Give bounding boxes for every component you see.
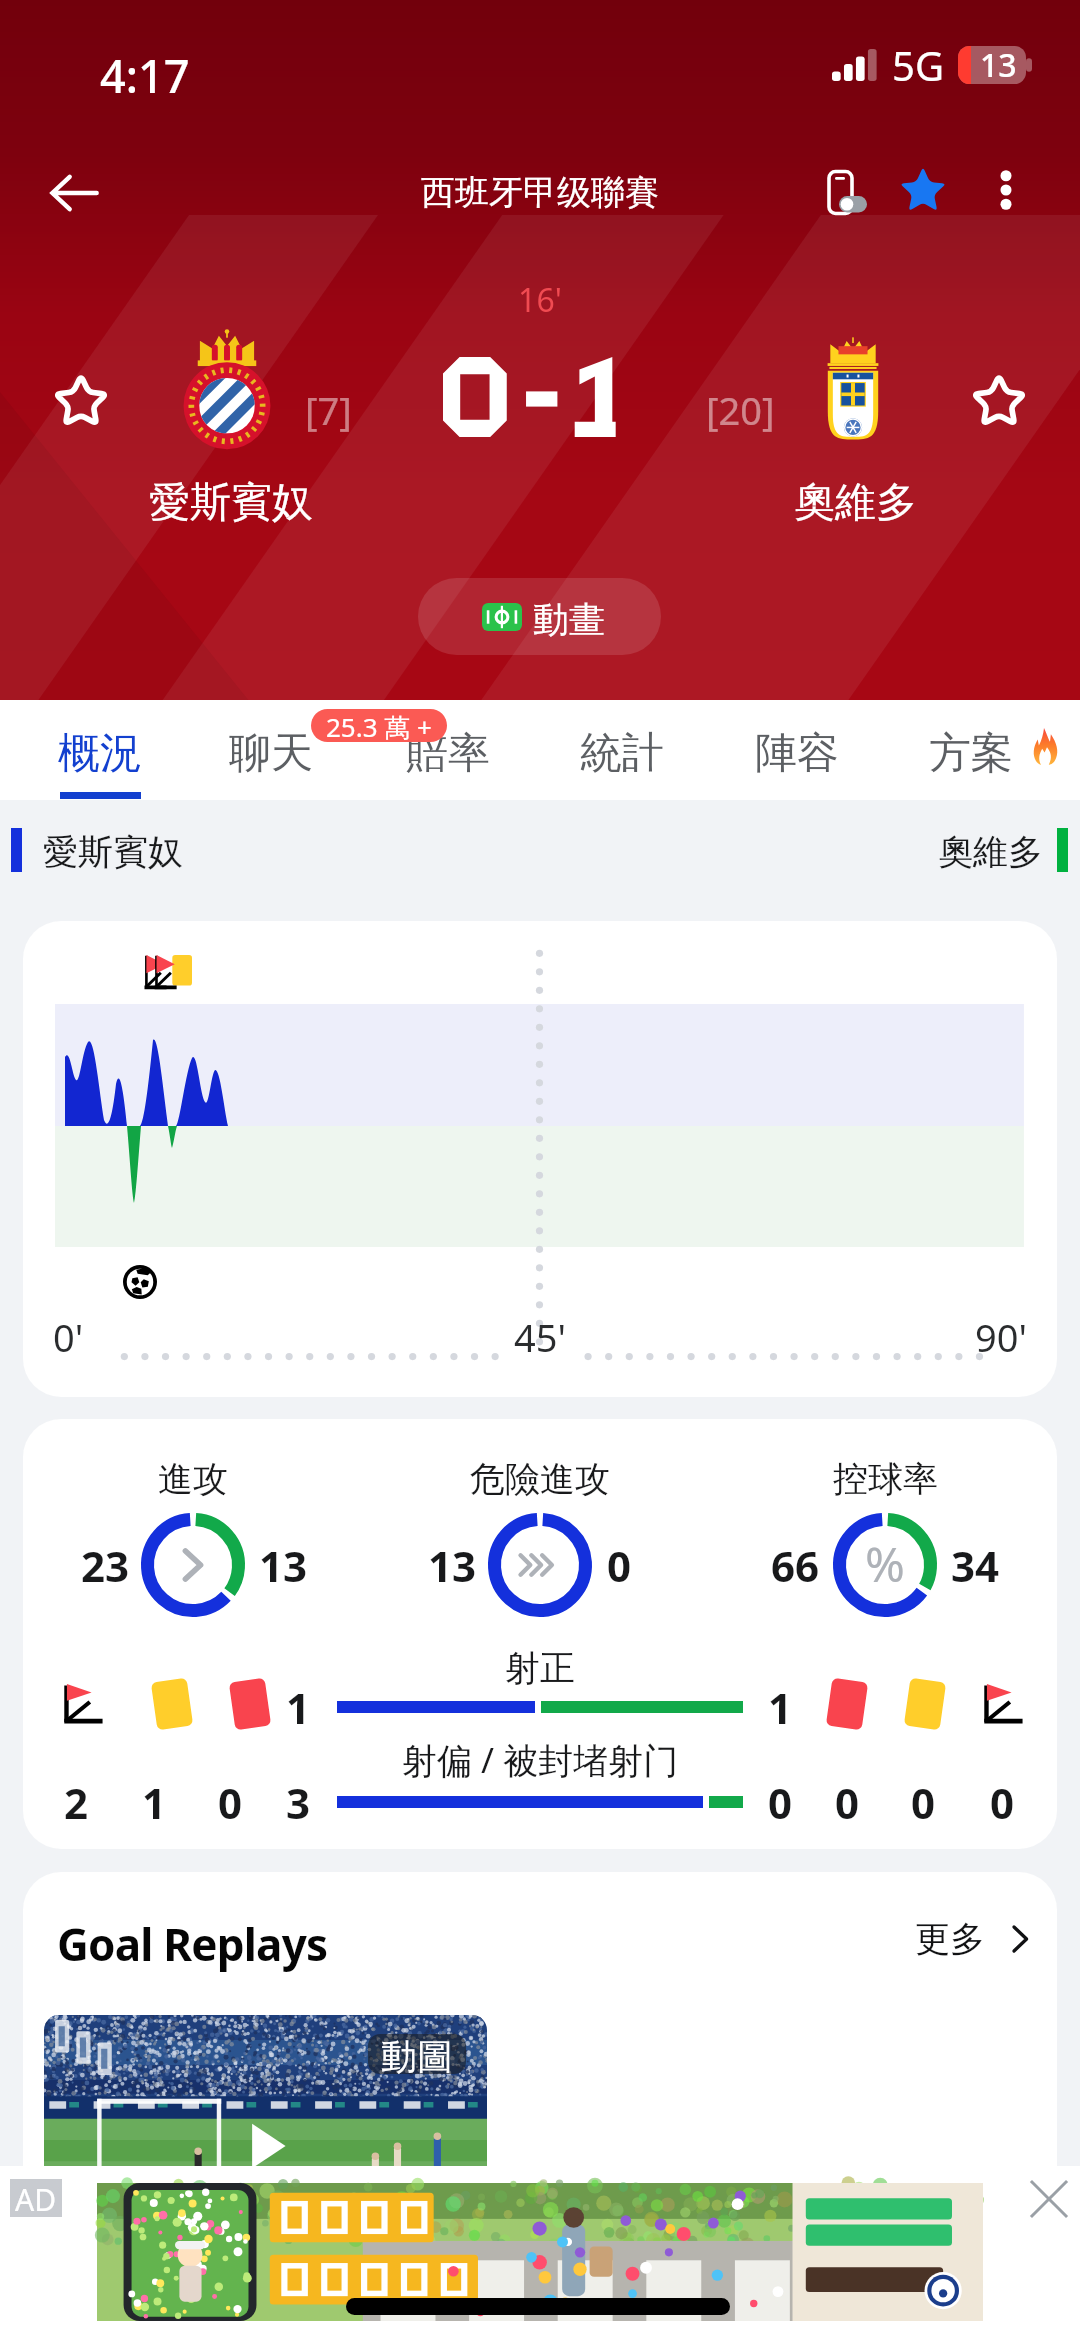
staticText: 概況 <box>58 727 142 780</box>
staticText: 聊天 <box>229 727 313 780</box>
button[interactable]: 方案 <box>884 700 1058 800</box>
button[interactable]: Favourite away team <box>964 366 1034 436</box>
staticText: 13 <box>980 43 1017 87</box>
staticText: 66 <box>771 1537 820 1594</box>
staticText: 愛斯賓奴 <box>43 830 183 874</box>
staticText: 射偏 / 被封堵射门 <box>402 1736 679 1784</box>
staticText: 0 <box>218 1774 243 1831</box>
staticText: 0 <box>911 1774 936 1831</box>
button[interactable]: Favourite home team <box>46 366 116 436</box>
staticText: 方案 <box>929 727 1013 780</box>
button[interactable]: Favourite <box>878 145 968 235</box>
button[interactable]: 統計 <box>535 700 709 800</box>
staticText: 0 <box>835 1774 860 1831</box>
staticText: 控球率 <box>833 1457 938 1501</box>
button[interactable]: More options <box>961 145 1051 235</box>
staticText: 34 <box>951 1537 1000 1594</box>
staticText: 4:17 <box>100 45 190 106</box>
button[interactable]: 聊天 <box>184 700 358 800</box>
staticText: % <box>865 1531 905 1596</box>
staticText: 西班牙甲级聯賽 <box>421 171 659 214</box>
staticText: 1 <box>142 1774 167 1831</box>
staticText: 奧維多 <box>794 477 917 529</box>
staticText: 0' <box>53 1311 84 1363</box>
staticText: 動圖 <box>381 2034 453 2074</box>
staticText: 16' <box>0 278 1080 322</box>
staticText: Goal Replays <box>57 1914 328 1974</box>
button[interactable]: 更多 <box>909 1908 1041 1970</box>
button[interactable]: 陣容 <box>710 700 884 800</box>
button[interactable]: Close ad <box>1023 2173 1075 2225</box>
staticText: 5G <box>892 38 944 92</box>
button[interactable]: 賠率 <box>361 700 535 800</box>
button[interactable]: 動畫 <box>418 578 661 655</box>
staticText: 射正 <box>505 1646 575 1690</box>
staticText: 13 <box>428 1537 477 1594</box>
staticText: 0 <box>768 1774 793 1831</box>
staticText: [7] <box>305 384 352 436</box>
staticText: 90' <box>975 1311 1028 1363</box>
staticText: AD <box>15 2179 57 2217</box>
button[interactable]: 概況 <box>13 700 187 800</box>
staticText: 賠率 <box>406 727 490 780</box>
staticText: 1 <box>768 1679 793 1736</box>
staticText: 3 <box>286 1774 311 1831</box>
staticText: 動畫 <box>533 597 605 642</box>
staticText: 統計 <box>580 727 664 780</box>
staticText: [20] <box>706 384 775 436</box>
staticText: 愛斯賓奴 <box>149 477 313 529</box>
staticText: 25.3 萬 + <box>326 709 432 742</box>
button[interactable]: Back <box>28 147 120 239</box>
button[interactable]: 進攻 <box>23 1419 1057 1849</box>
button[interactable]: Notification toggle <box>800 145 890 235</box>
staticText: 23 <box>81 1537 130 1594</box>
staticText: 0 <box>607 1537 632 1594</box>
staticText: 進攻 <box>158 1457 228 1501</box>
button[interactable]: 0' <box>23 921 1057 1397</box>
staticText: 陣容 <box>755 727 839 780</box>
staticText: 13 <box>259 1537 308 1594</box>
staticText: 奧維多 <box>938 830 1043 874</box>
staticText: 2 <box>64 1774 89 1831</box>
staticText: 45' <box>23 1311 1057 1363</box>
staticText: 0 <box>990 1774 1015 1831</box>
staticText: 更多 <box>915 1917 985 1961</box>
button[interactable]: Play goal replay <box>44 2015 487 2265</box>
staticText: 危險進攻 <box>470 1457 610 1501</box>
staticText: 1 <box>286 1679 311 1736</box>
button[interactable] <box>97 2183 983 2321</box>
